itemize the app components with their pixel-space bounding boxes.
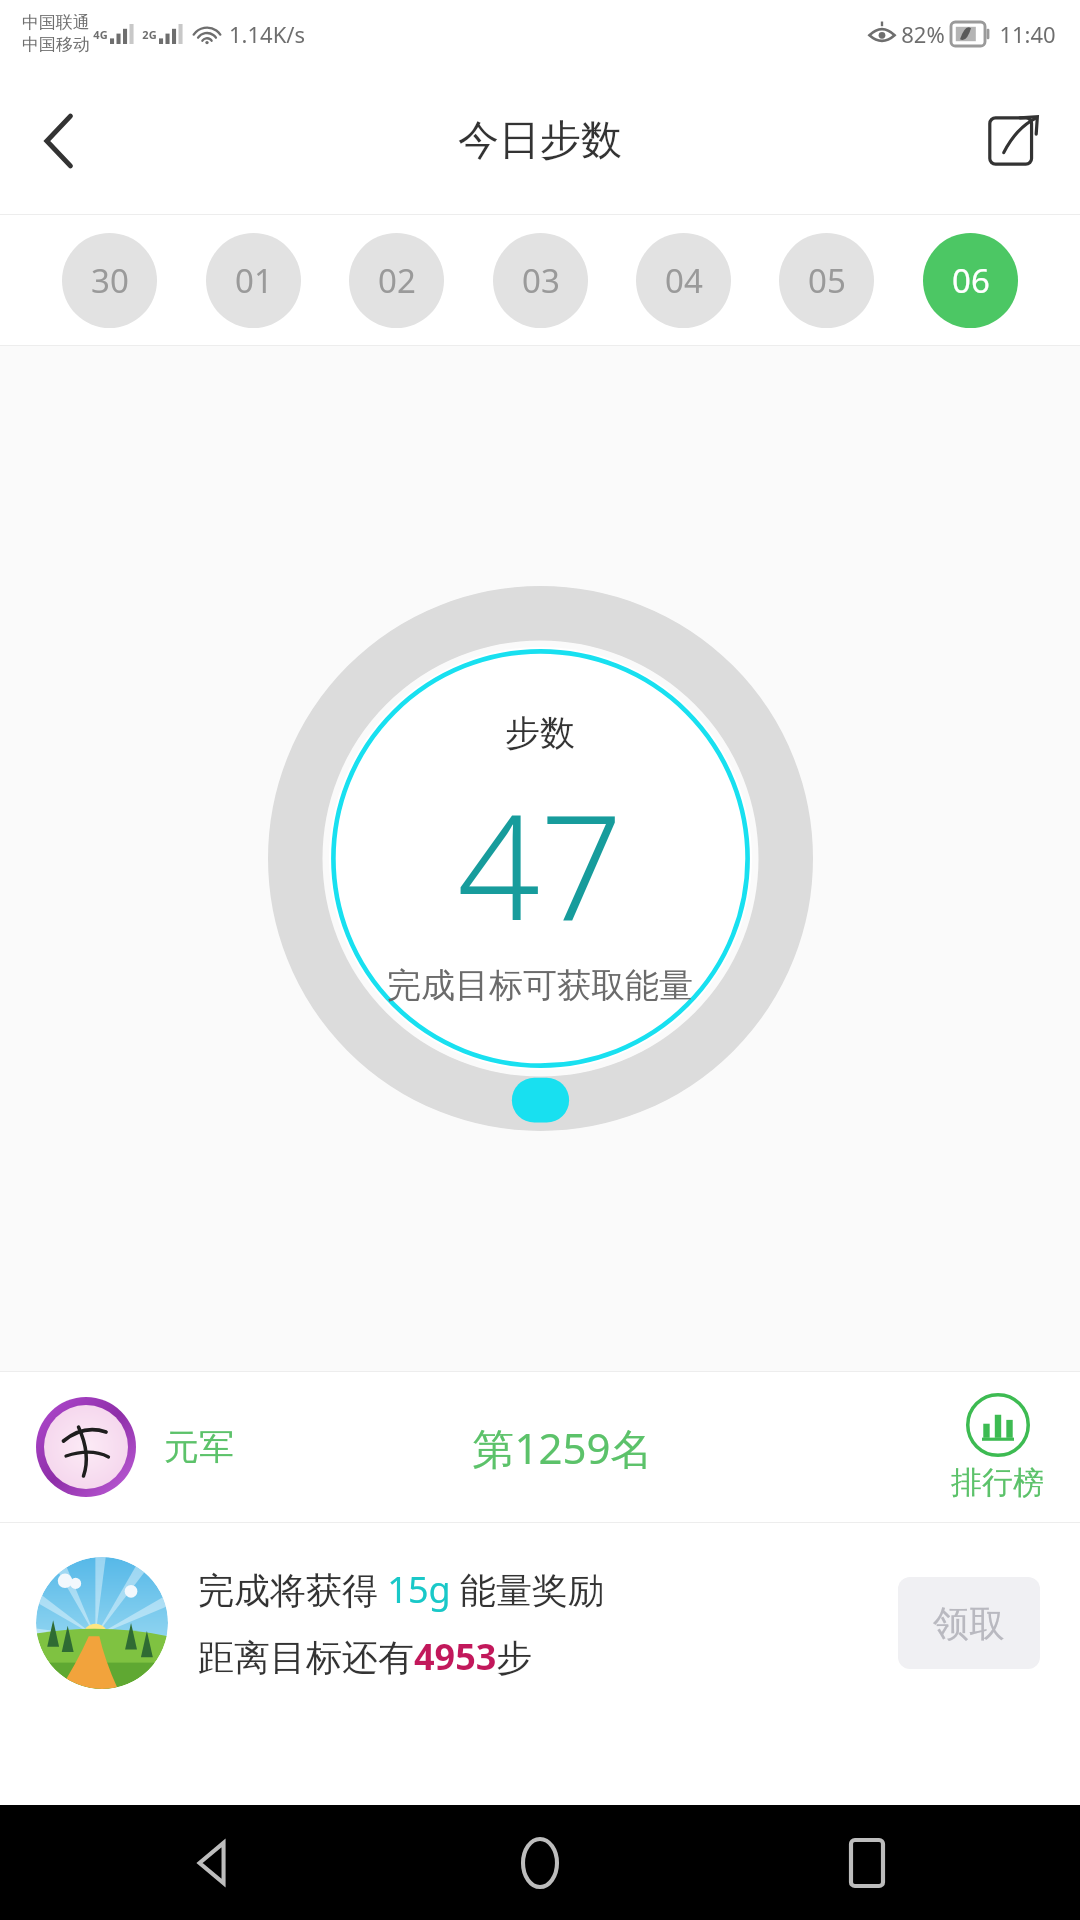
staticText: 47 bbox=[457, 765, 623, 962]
staticText: 排行榜 bbox=[951, 1463, 1044, 1502]
button[interactable]: 领取 bbox=[898, 1577, 1040, 1669]
button[interactable]: 06 bbox=[923, 233, 1018, 328]
staticText: 第1259名 bbox=[472, 1419, 653, 1476]
button[interactable]: 元军 bbox=[0, 1372, 1080, 1522]
button[interactable]: 30 bbox=[62, 233, 157, 328]
button[interactable]: 01 bbox=[206, 233, 301, 328]
staticText: 步数 bbox=[505, 711, 575, 755]
button[interactable]: Share bbox=[968, 96, 1058, 186]
button[interactable]: 03 bbox=[493, 233, 588, 328]
staticText: 元军 bbox=[164, 1425, 234, 1469]
button[interactable]: 排行榜 bbox=[951, 1393, 1080, 1502]
staticText: 30 bbox=[91, 258, 129, 303]
button[interactable]: Back bbox=[14, 96, 104, 186]
staticText: 完成将获得 15g 能量奖励 bbox=[198, 1565, 605, 1614]
staticText: 2G bbox=[142, 27, 157, 42]
button[interactable]: Back bbox=[170, 1820, 256, 1906]
button[interactable]: 05 bbox=[779, 233, 874, 328]
staticText: 04 bbox=[665, 258, 703, 303]
staticText: 今日步数 bbox=[458, 115, 622, 167]
button[interactable]: 02 bbox=[349, 233, 444, 328]
staticText: 1.14K/s bbox=[229, 19, 305, 49]
staticText: 中国联通 bbox=[22, 12, 90, 33]
staticText: 05 bbox=[808, 258, 846, 303]
staticText: 中国移动 bbox=[22, 34, 90, 55]
staticText: 06 bbox=[952, 258, 990, 303]
button[interactable]: 04 bbox=[636, 233, 731, 328]
staticText: 距离目标还有4953步 bbox=[198, 1632, 533, 1681]
staticText: 领取 bbox=[933, 1601, 1005, 1646]
staticText: 82% bbox=[901, 19, 945, 49]
staticText: 11:40 bbox=[999, 19, 1056, 49]
staticText: 完成目标可获取能量 bbox=[387, 964, 693, 1007]
staticText: 4G bbox=[93, 27, 108, 42]
staticText: 02 bbox=[378, 258, 416, 303]
button[interactable]: Home bbox=[497, 1820, 583, 1906]
staticText: 03 bbox=[522, 258, 560, 303]
staticText: 01 bbox=[235, 258, 273, 303]
button[interactable]: Recents bbox=[824, 1820, 910, 1906]
